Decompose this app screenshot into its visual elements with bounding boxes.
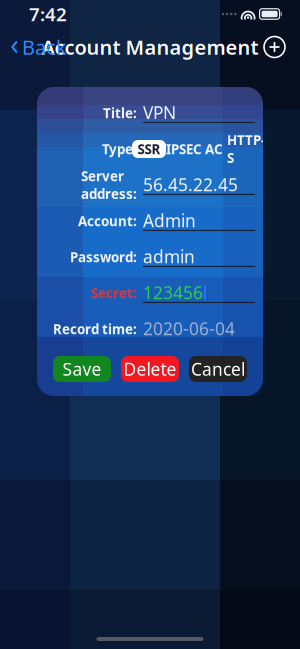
button[interactable]: HTTPS	[226, 140, 266, 158]
button[interactable]: Delete	[121, 356, 179, 382]
staticText: admin	[143, 245, 195, 268]
staticText: SSR	[137, 140, 160, 158]
button[interactable]: Cancel	[189, 356, 247, 382]
button[interactable]: SSR	[132, 140, 166, 158]
button[interactable]: Save	[53, 356, 111, 382]
staticText: IPSEC	[166, 140, 202, 158]
staticText: Record time:	[53, 320, 137, 338]
staticText: 123456	[143, 281, 203, 304]
staticText: Account Management	[41, 34, 258, 60]
button[interactable]: Add account	[263, 31, 300, 62]
staticText: 56.45.22.45	[143, 173, 238, 196]
staticText: Title:	[103, 104, 137, 122]
staticText: Save	[62, 357, 101, 380]
staticText: Delete	[123, 357, 176, 380]
button[interactable]: AC	[202, 140, 226, 158]
staticText: 2020-06-04	[143, 317, 235, 340]
staticText: Password:	[70, 248, 137, 266]
staticText: AC	[205, 140, 223, 158]
staticText: Admin	[143, 209, 196, 232]
button[interactable]: IPSEC	[166, 140, 202, 158]
staticText: Secret:	[91, 284, 137, 302]
staticText: Server address:	[81, 167, 137, 203]
staticText: Account:	[78, 212, 137, 230]
button[interactable]: Back	[0, 28, 67, 66]
staticText: HTTPS	[227, 131, 265, 167]
staticText: Back	[22, 34, 67, 60]
staticText: 7:42	[29, 2, 67, 26]
staticText: Cancel	[191, 357, 245, 380]
staticText: Type:	[102, 140, 137, 158]
staticText: VPN	[143, 101, 176, 124]
